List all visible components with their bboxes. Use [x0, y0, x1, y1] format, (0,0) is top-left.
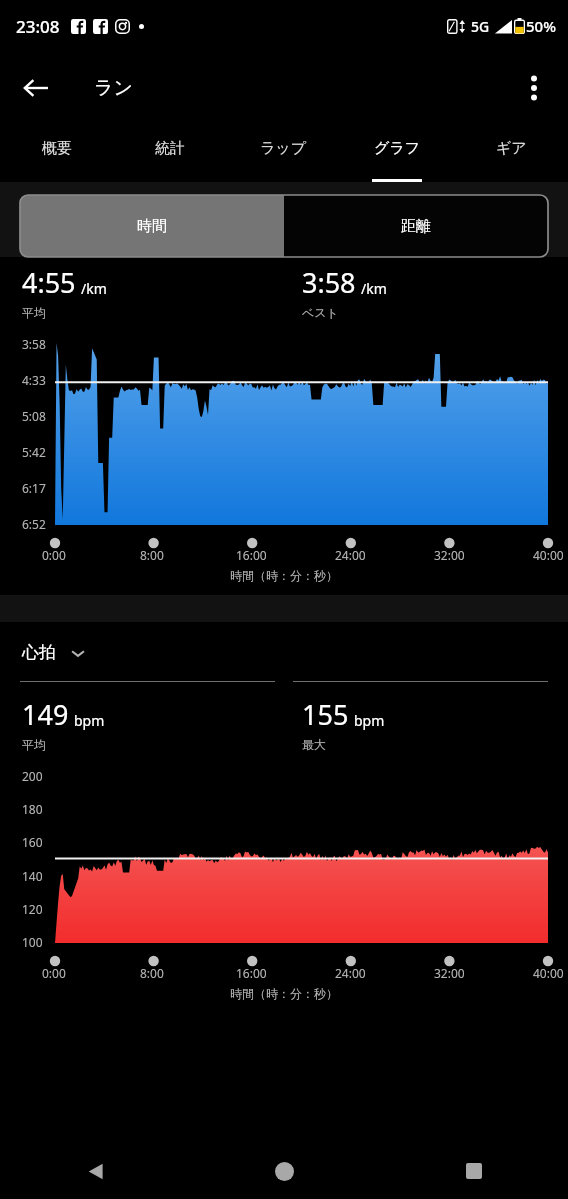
staticText: 統計 [155, 139, 185, 158]
staticText: 平均 [22, 737, 46, 752]
staticText: 距離 [401, 217, 431, 236]
staticText: bpm [354, 711, 385, 730]
staticText: 40:00 [533, 547, 564, 563]
button[interactable]: Recent apps [379, 1143, 568, 1199]
staticText: 6:17 [22, 480, 46, 496]
button[interactable]: 統計 [113, 124, 226, 182]
staticText: 32:00 [434, 547, 465, 563]
staticText: 3:58 [22, 336, 46, 352]
staticText: グラフ [374, 139, 421, 158]
staticText: 23:08 [16, 15, 60, 38]
staticText: 5:08 [22, 408, 46, 424]
staticText: 160 [22, 834, 43, 850]
staticText: 0:00 [42, 965, 66, 981]
staticText: 5:42 [22, 444, 46, 460]
staticText: 4:55 [22, 264, 76, 301]
staticText: /km [81, 279, 107, 298]
staticText: 5G [471, 17, 490, 36]
staticText: 時間（時：分：秒） [230, 986, 338, 1001]
staticText: ギア [496, 139, 527, 158]
staticText: ベスト [302, 305, 339, 320]
staticText: 24:00 [335, 547, 366, 563]
button[interactable]: グラフ [340, 124, 454, 182]
staticText: 8:00 [140, 547, 164, 563]
staticText: 4:33 [22, 372, 46, 388]
button[interactable]: 時間 [20, 195, 284, 257]
staticText: 120 [22, 901, 43, 917]
staticText: /km [361, 279, 387, 298]
staticText: 時間 [137, 217, 167, 236]
staticText: 149 [22, 696, 69, 733]
staticText: 時間（時：分：秒） [230, 568, 338, 583]
staticText: 24:00 [335, 965, 366, 981]
staticText: 40:00 [533, 965, 564, 981]
staticText: ラップ [260, 139, 307, 158]
staticText: 32:00 [434, 965, 465, 981]
button[interactable]: ラップ [226, 124, 340, 182]
staticText: 0:00 [42, 547, 66, 563]
staticText: 140 [22, 868, 43, 884]
button[interactable]: Back [12, 64, 60, 112]
button[interactable]: Home [190, 1143, 379, 1199]
staticText: 100 [22, 934, 43, 950]
button[interactable]: More options [510, 64, 558, 112]
other: Expand heart rate [69, 644, 87, 662]
staticText: 155 [302, 696, 349, 733]
staticText: 180 [22, 801, 43, 817]
staticText: 16:00 [236, 547, 267, 563]
staticText: 概要 [42, 139, 72, 158]
staticText: bpm [74, 711, 105, 730]
button[interactable]: 距離 [284, 195, 548, 257]
button[interactable]: 概要 [0, 124, 113, 182]
staticText: 平均 [22, 305, 46, 320]
button[interactable]: Back [0, 1143, 190, 1199]
staticText: 16:00 [236, 965, 267, 981]
button[interactable]: ギア [454, 124, 568, 182]
staticText: 50% [526, 16, 556, 36]
staticText: ラン [94, 76, 133, 100]
staticText: 3:58 [302, 264, 356, 301]
staticText: 8:00 [140, 965, 164, 981]
button[interactable]: 心拍 [0, 640, 568, 665]
staticText: 最大 [302, 737, 326, 752]
staticText: 心拍 [22, 642, 56, 663]
staticText: 200 [22, 768, 43, 784]
staticText: 6:52 [22, 516, 46, 532]
